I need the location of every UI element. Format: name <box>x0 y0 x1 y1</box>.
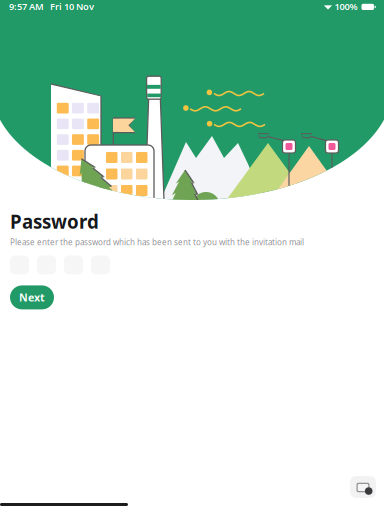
button[interactable]: Next <box>10 285 54 309</box>
staticText: 100% <box>334 0 357 13</box>
staticText: Please enter the password which has been… <box>10 237 304 247</box>
button[interactable]: Hide keyboard <box>350 476 376 498</box>
staticText: Next <box>19 290 45 304</box>
staticText: 9:57 AM Fri 10 Nov <box>9 0 94 13</box>
staticText: Password <box>10 209 99 234</box>
